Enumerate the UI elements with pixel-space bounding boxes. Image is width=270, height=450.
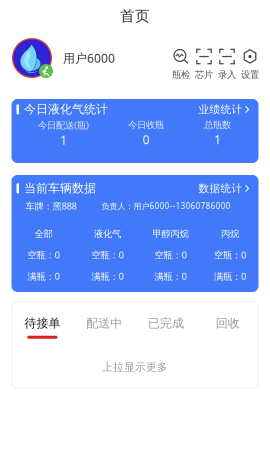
staticText: 满瓶：0 [214,270,246,282]
staticText: 丙烷 [221,228,239,240]
button[interactable]: 芯片 [196,48,212,80]
staticText: 配送中 [86,316,122,331]
staticText: 待接单 [24,316,60,331]
button[interactable]: 设置 [242,48,258,80]
staticText: 今日配送(瓶) [38,119,89,131]
staticText: 瓶检 [172,69,190,80]
staticText: 1 [60,132,67,148]
staticText: 业绩统计 [198,103,242,116]
staticText: 芯片 [195,69,213,80]
staticText: 满瓶：0 [27,270,59,282]
staticText: 空瓶：0 [214,249,246,261]
staticText: 负责人：用户6000--13060786000 [101,201,230,211]
staticText: 数据统计 [198,182,242,195]
button[interactable]: 已完成 [135,310,197,345]
staticText: 已完成 [148,316,184,331]
staticText: 空瓶：0 [91,249,123,261]
staticText: 用户6000 [63,50,115,66]
staticText: 设置 [241,69,259,80]
staticText: 总瓶数 [204,119,231,131]
staticText: 上拉显示更多 [102,361,168,374]
staticText: 1 [214,132,221,148]
staticText: 回收 [216,316,240,331]
button[interactable]: 录入 [219,48,235,80]
staticText: 满瓶：0 [91,270,123,282]
staticText: 满瓶：0 [154,270,186,282]
staticText: 今日液化气统计 [24,102,108,117]
button[interactable]: 待接单 [11,310,73,345]
staticText: 0 [142,132,149,148]
staticText: 当前车辆数据 [24,181,96,196]
staticText: 液化气 [94,228,121,240]
staticText: 今日收瓶 [128,119,164,131]
button[interactable]: 瓶检 [173,48,189,80]
staticText: 车牌：黑888 [25,200,76,212]
button[interactable]: 回收 [197,310,259,345]
staticText: 全部 [34,228,52,240]
staticText: 空瓶：0 [154,249,186,261]
button[interactable]: 业绩统计 [198,103,249,116]
staticText: 甲醇丙烷 [152,228,188,240]
button[interactable]: 数据统计 [198,182,249,195]
staticText: 空瓶：0 [27,249,59,261]
button[interactable]: 配送中 [73,310,135,345]
staticText: 录入 [218,69,236,80]
staticText: 首页 [120,7,150,25]
